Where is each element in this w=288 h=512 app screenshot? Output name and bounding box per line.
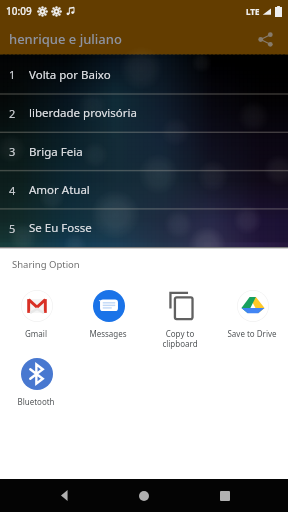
staticText: Volta por Baixo: [29, 67, 111, 83]
staticText: Amor Atual: [29, 182, 90, 198]
button[interactable]: Back: [47, 479, 81, 512]
staticText: Briga Feia: [29, 144, 83, 160]
button[interactable]: 5: [0, 209, 288, 247]
staticText: Copy to clipboard: [162, 328, 198, 349]
staticText: Save to Drive: [227, 328, 277, 339]
staticText: 2: [9, 106, 16, 121]
button[interactable]: Recents: [208, 479, 242, 512]
staticText: Sharing Option: [12, 258, 80, 271]
staticText: 4: [9, 183, 16, 198]
button[interactable]: 3: [0, 132, 288, 171]
staticText: liberdade provisória: [29, 105, 137, 121]
staticText: Se Eu Fosse: [29, 220, 92, 236]
button[interactable]: 2: [0, 94, 288, 132]
button[interactable]: Messages: [72, 289, 144, 351]
staticText: 1: [9, 67, 16, 82]
staticText: henrique e juliano: [9, 30, 122, 48]
button[interactable]: Bluetooth: [0, 357, 72, 419]
button[interactable]: Share: [252, 26, 278, 52]
button[interactable]: Home: [127, 479, 161, 512]
button[interactable]: Gmail: [0, 289, 72, 351]
staticText: 5: [9, 221, 16, 236]
staticText: Messages: [89, 328, 127, 339]
button[interactable]: 1: [0, 55, 288, 94]
staticText: LTE: [246, 6, 260, 17]
staticText: Bluetooth: [17, 396, 55, 407]
staticText: 3: [9, 144, 16, 159]
staticText: Gmail: [25, 328, 47, 339]
button[interactable]: Copy to clipboard: [144, 289, 216, 351]
button[interactable]: 4: [0, 171, 288, 209]
staticText: 10:09: [6, 4, 32, 18]
button[interactable]: Save to Drive: [216, 289, 288, 351]
